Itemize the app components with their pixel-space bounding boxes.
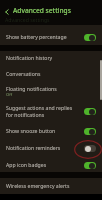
staticText: Wireless emergency alerts — [6, 182, 70, 189]
button[interactable]: Switch on — [84, 128, 96, 135]
staticText: Off — [6, 92, 13, 98]
staticText: Suggest actions and replies — [6, 104, 73, 111]
staticText: Advanced settings — [13, 6, 71, 15]
staticText: Advanced settings — [5, 16, 50, 23]
button[interactable]: Switch on — [84, 162, 96, 169]
button[interactable]: Wireless emergency alerts — [0, 178, 102, 194]
button[interactable]: Switch off — [84, 145, 96, 152]
button[interactable]: Show snooze button — [0, 123, 102, 140]
button[interactable]: Switch on — [84, 108, 96, 115]
staticText: for notifications — [6, 111, 45, 118]
button[interactable]: Floating notifications — [0, 82, 102, 101]
staticText: Show snooze button — [6, 127, 56, 134]
button[interactable]: Conversations — [0, 65, 102, 82]
button[interactable]: Show battery percentage — [0, 26, 102, 45]
staticText: Show battery percentage — [6, 33, 67, 40]
button[interactable]: Notification history — [0, 51, 102, 65]
button[interactable]: Notification reminders — [0, 140, 102, 157]
staticText: Notification history — [6, 54, 53, 61]
button[interactable]: Switch on — [84, 34, 96, 41]
button[interactable]: App icon badges — [0, 157, 102, 172]
staticText: App icon badges — [6, 161, 47, 168]
staticText: Conversations — [6, 70, 41, 77]
staticText: Floating notifications — [6, 85, 57, 92]
button[interactable]: Navigate up — [1, 6, 12, 17]
staticText: Notification reminders — [6, 144, 61, 151]
button[interactable]: Suggest actions and replies — [0, 101, 102, 123]
